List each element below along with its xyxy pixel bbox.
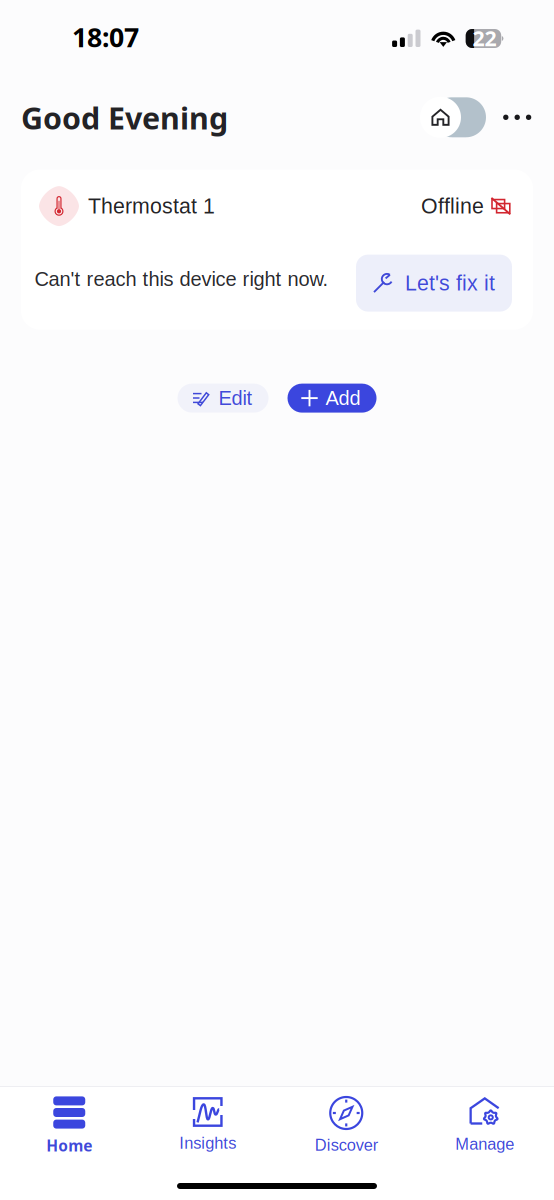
button[interactable]: Home	[420, 100, 486, 144]
staticText: Offline	[421, 194, 484, 218]
staticText: 22	[472, 23, 496, 53]
staticText: Good Evening	[21, 97, 228, 138]
button[interactable]: Home	[0, 1087, 138, 1157]
staticText: Manage	[455, 1135, 514, 1153]
staticText: Add	[325, 387, 360, 409]
button[interactable]: Let's fix it	[356, 258, 512, 315]
staticText: Let's fix it	[405, 271, 495, 295]
button[interactable]: Add	[287, 384, 376, 413]
staticText: Thermostat 1	[88, 194, 215, 218]
button[interactable]: Edit	[177, 384, 268, 413]
button[interactable]: Insights	[138, 1087, 277, 1157]
staticText: Home	[46, 1135, 92, 1156]
staticText: 18:07	[72, 19, 139, 55]
button[interactable]: Manage	[415, 1087, 554, 1157]
staticText: Insights	[179, 1134, 236, 1152]
button[interactable]: More options	[498, 100, 537, 144]
button[interactable]: Discover	[277, 1087, 415, 1157]
staticText: Discover	[315, 1136, 378, 1154]
staticText: Edit	[218, 387, 252, 409]
staticText: Can't reach this device right now.	[34, 268, 328, 290]
